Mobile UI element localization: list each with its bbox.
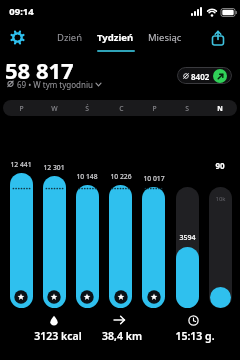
button[interactable]: Tydzień: [95, 28, 136, 46]
staticText: P: [152, 104, 157, 113]
staticText: Tydzień: [97, 31, 134, 44]
staticText: 38,4 km: [102, 329, 142, 343]
staticText: 3594: [179, 233, 196, 243]
button[interactable]: [10, 173, 33, 308]
staticText: 3123 kcal: [34, 329, 82, 343]
staticText: 8402: [191, 71, 210, 82]
staticText: N: [217, 104, 223, 113]
staticText: P: [19, 104, 24, 113]
staticText: 10 226: [110, 172, 132, 181]
button[interactable]: [142, 187, 165, 308]
staticText: 12 441: [10, 160, 32, 169]
staticText: 10 148: [76, 172, 98, 181]
button[interactable]: [90, 313, 150, 345]
staticText: Dzień: [57, 31, 83, 44]
staticText: S: [185, 104, 189, 113]
staticText: 10k: [215, 195, 226, 203]
button[interactable]: Miesiąc: [143, 28, 187, 46]
staticText: Miesiąc: [148, 31, 182, 44]
staticText: 69 • W tym tygodniu: [17, 79, 93, 90]
staticText: C: [119, 104, 124, 113]
button[interactable]: [95, 81, 102, 88]
button[interactable]: [76, 185, 99, 308]
button[interactable]: [109, 185, 132, 308]
staticText: 12 301: [43, 163, 65, 172]
staticText: 10 017: [143, 174, 165, 183]
staticText: 09:14: [9, 5, 34, 18]
button[interactable]: [209, 187, 232, 308]
button[interactable]: [176, 187, 199, 308]
button[interactable]: 8402: [177, 67, 232, 84]
button[interactable]: [8, 28, 26, 46]
staticText: W: [51, 104, 58, 113]
staticText: 15:13 g.: [175, 329, 215, 343]
button[interactable]: Dzień: [52, 28, 87, 46]
staticText: 90: [215, 160, 225, 171]
button[interactable]: [207, 27, 229, 49]
button[interactable]: [12, 313, 92, 345]
staticText: Ś: [85, 104, 89, 113]
button[interactable]: [160, 313, 230, 345]
button[interactable]: [43, 176, 66, 308]
staticText: 58 817: [5, 55, 74, 85]
